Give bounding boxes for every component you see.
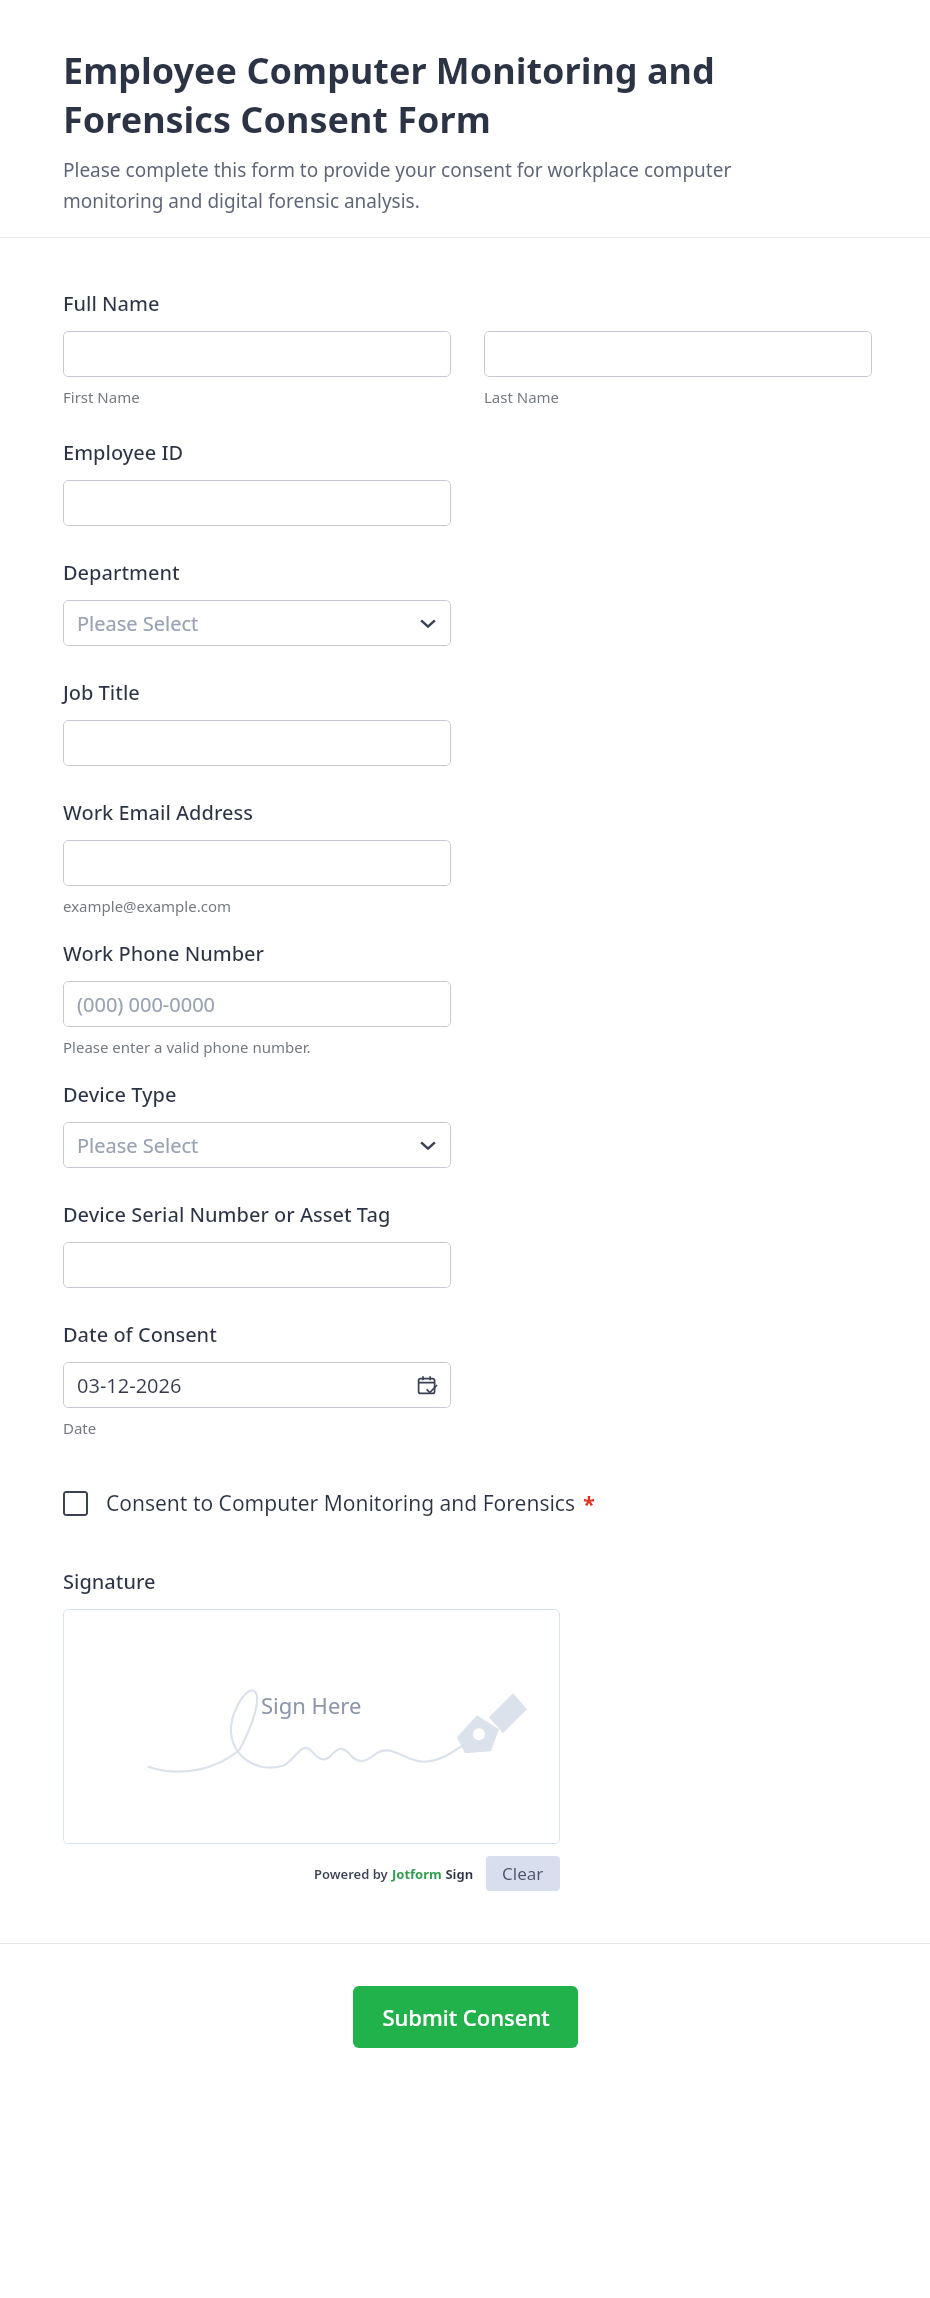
staticText: Please Select — [77, 1132, 199, 1159]
staticText: 03-12-2026 — [77, 1372, 182, 1399]
button[interactable] — [484, 331, 872, 377]
other: Open dropdown — [419, 1136, 437, 1154]
staticText: Date — [63, 1418, 97, 1438]
staticText: Device Serial Number or Asset Tag — [63, 1201, 391, 1228]
staticText: Submit Consent — [382, 2002, 550, 2032]
other: Open dropdown — [419, 614, 437, 632]
staticText: Date of Consent — [63, 1321, 217, 1348]
button[interactable]: Signature pad, sign here — [63, 1609, 560, 1844]
staticText: Please enter a valid phone number. — [63, 1037, 311, 1057]
staticText: Sign Here — [261, 1690, 362, 1720]
staticText: Device Type — [63, 1081, 177, 1108]
button[interactable] — [63, 720, 451, 766]
button[interactable]: Clear — [486, 1856, 560, 1891]
staticText: Department — [63, 559, 180, 586]
staticText: Sign — [442, 1865, 474, 1883]
staticText: Clear — [502, 1862, 544, 1885]
staticText: Work Phone Number — [63, 940, 264, 967]
staticText: Consent to Computer Monitoring and Foren… — [106, 1489, 575, 1518]
button[interactable]: Consent to Computer Monitoring and Foren… — [63, 1484, 595, 1522]
staticText: Employee ID — [63, 439, 184, 466]
button[interactable] — [63, 331, 451, 377]
staticText: (000) 000-0000 — [77, 991, 216, 1018]
staticText: Signature — [63, 1568, 156, 1595]
staticText: Last Name — [484, 387, 560, 407]
button[interactable]: 03-12-2026 — [63, 1362, 451, 1408]
staticText: First Name — [63, 387, 140, 407]
staticText: Please Select — [77, 610, 199, 637]
staticText: Full Name — [63, 290, 160, 317]
button[interactable]: Please Select — [63, 600, 451, 646]
button[interactable] — [63, 480, 451, 526]
staticText: Please complete this form to provide you… — [63, 157, 732, 213]
staticText: Work Email Address — [63, 799, 253, 826]
staticText: Powered by — [314, 1865, 392, 1883]
staticText: * — [583, 1488, 595, 1518]
button[interactable] — [63, 840, 451, 886]
staticText: Job Title — [63, 679, 140, 706]
staticText: example@example.com — [63, 896, 231, 916]
staticText: Employee Computer Monitoring and Forensi… — [63, 46, 715, 143]
button[interactable]: Submit Consent — [353, 1986, 578, 2048]
staticText: Jotform — [392, 1865, 442, 1883]
button[interactable]: Please Select — [63, 1122, 451, 1168]
button[interactable] — [63, 1242, 451, 1288]
other: Pick date — [417, 1375, 437, 1395]
button[interactable]: (000) 000-0000 — [63, 981, 451, 1027]
